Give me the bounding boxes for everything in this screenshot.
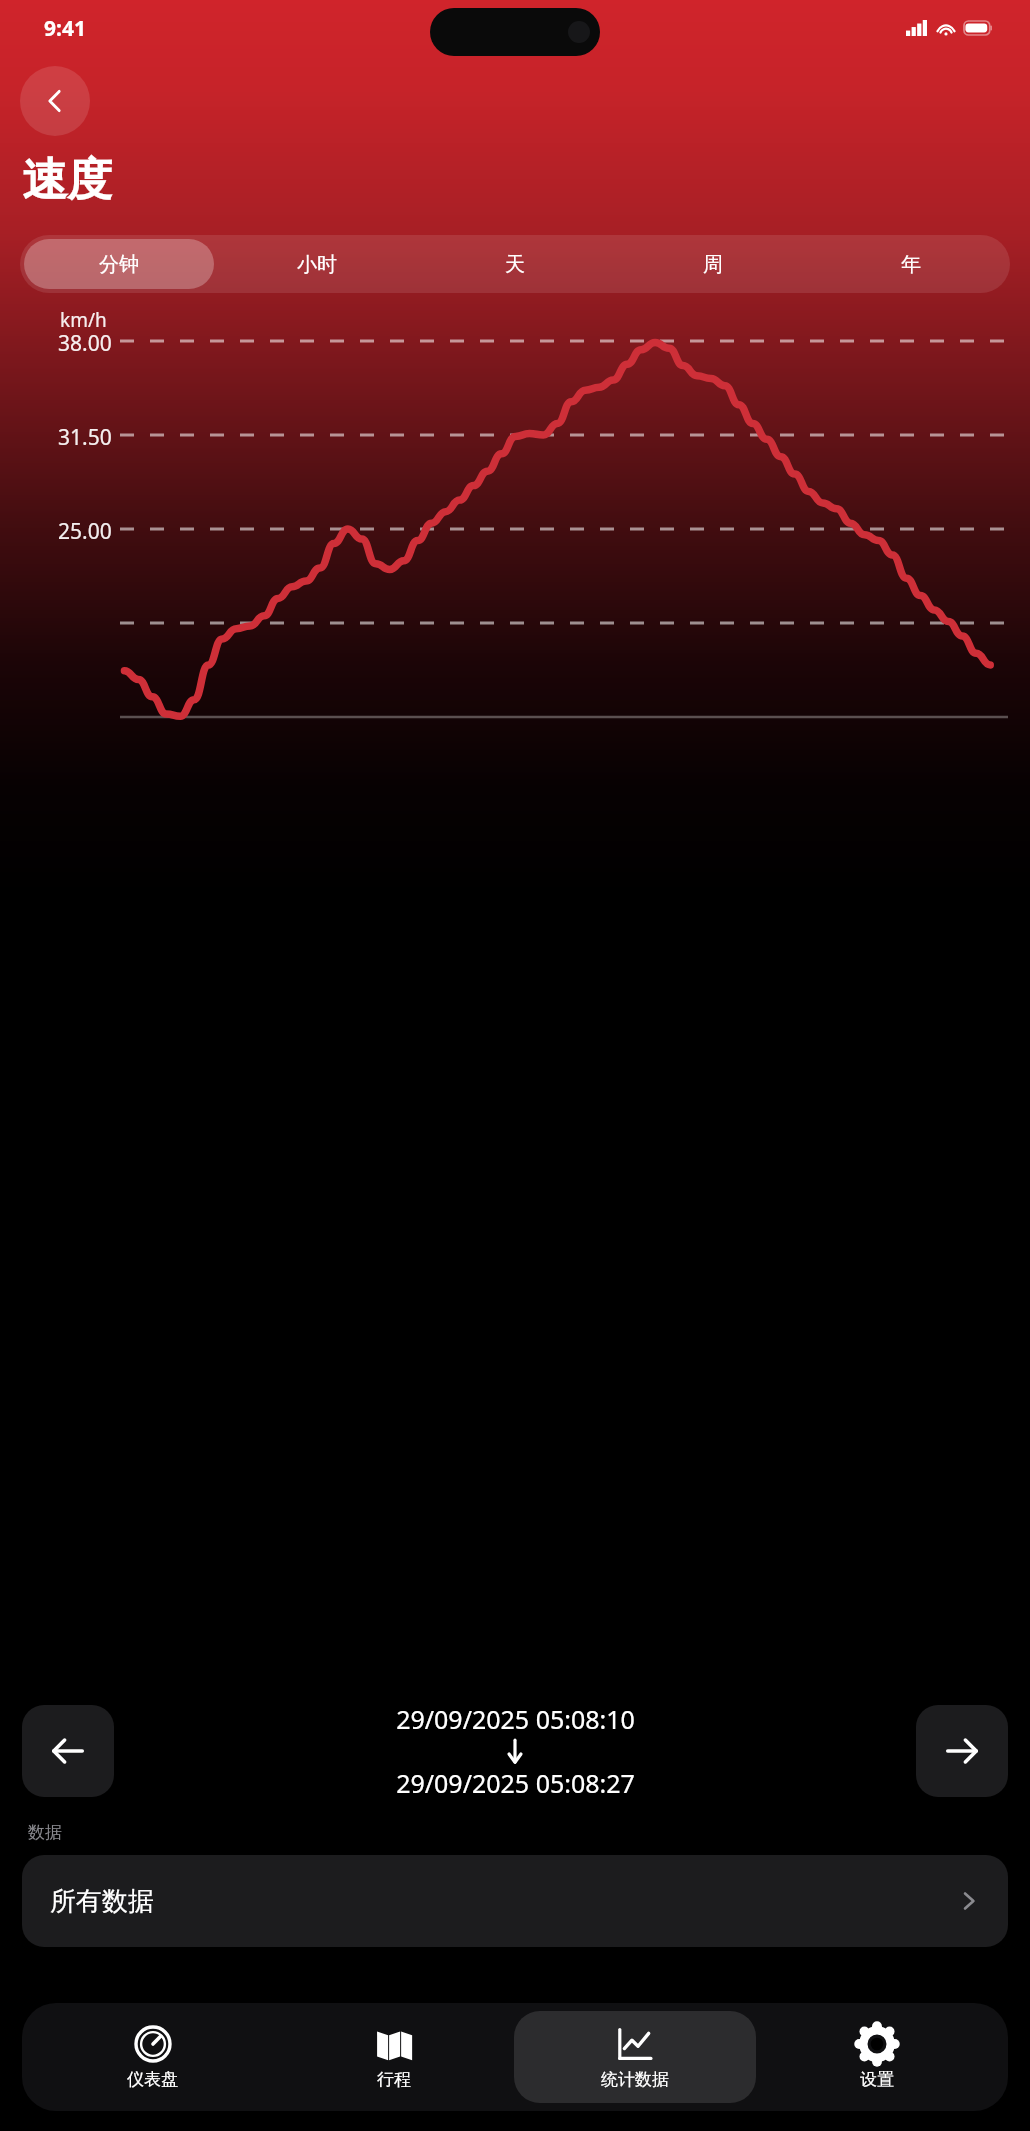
staticText: 25.00 xyxy=(58,517,112,546)
staticText: 所有数据 xyxy=(50,1885,154,1918)
staticText: 仪表盘 xyxy=(127,2069,178,2090)
staticText: 速度 xyxy=(22,152,112,209)
staticText: 分钟 xyxy=(99,252,139,277)
staticText: 小时 xyxy=(297,252,337,277)
button[interactable]: 周 xyxy=(618,239,808,289)
staticText: 29/09/2025 05:08:10 xyxy=(396,1702,635,1736)
staticText: 设置 xyxy=(860,2069,894,2090)
staticText: 年 xyxy=(901,252,921,277)
button[interactable]: Back xyxy=(20,66,90,136)
staticText: 9:41 xyxy=(44,14,86,43)
button[interactable]: 设置 xyxy=(756,2011,998,2103)
button[interactable]: Previous xyxy=(22,1705,114,1797)
button[interactable]: Next xyxy=(916,1705,1008,1797)
button[interactable]: 年 xyxy=(816,239,1006,289)
button[interactable]: 小时 xyxy=(222,239,412,289)
button[interactable]: 天 xyxy=(420,239,610,289)
button[interactable]: 统计数据 xyxy=(514,2011,756,2103)
staticText: 38.00 xyxy=(58,329,112,358)
staticText: 行程 xyxy=(377,2069,411,2090)
staticText: km/h xyxy=(60,307,107,333)
staticText: 统计数据 xyxy=(601,2069,669,2090)
button[interactable]: 分钟 xyxy=(24,239,214,289)
staticText: 29/09/2025 05:08:27 xyxy=(396,1766,635,1800)
button[interactable]: 所有数据 xyxy=(22,1855,1008,1947)
button[interactable]: 仪表盘 xyxy=(32,2011,273,2103)
button[interactable]: 行程 xyxy=(273,2011,514,2103)
staticText: 周 xyxy=(703,252,723,277)
staticText: 31.50 xyxy=(58,423,112,452)
staticText: 数据 xyxy=(28,1822,62,1843)
staticText: 天 xyxy=(505,252,525,277)
